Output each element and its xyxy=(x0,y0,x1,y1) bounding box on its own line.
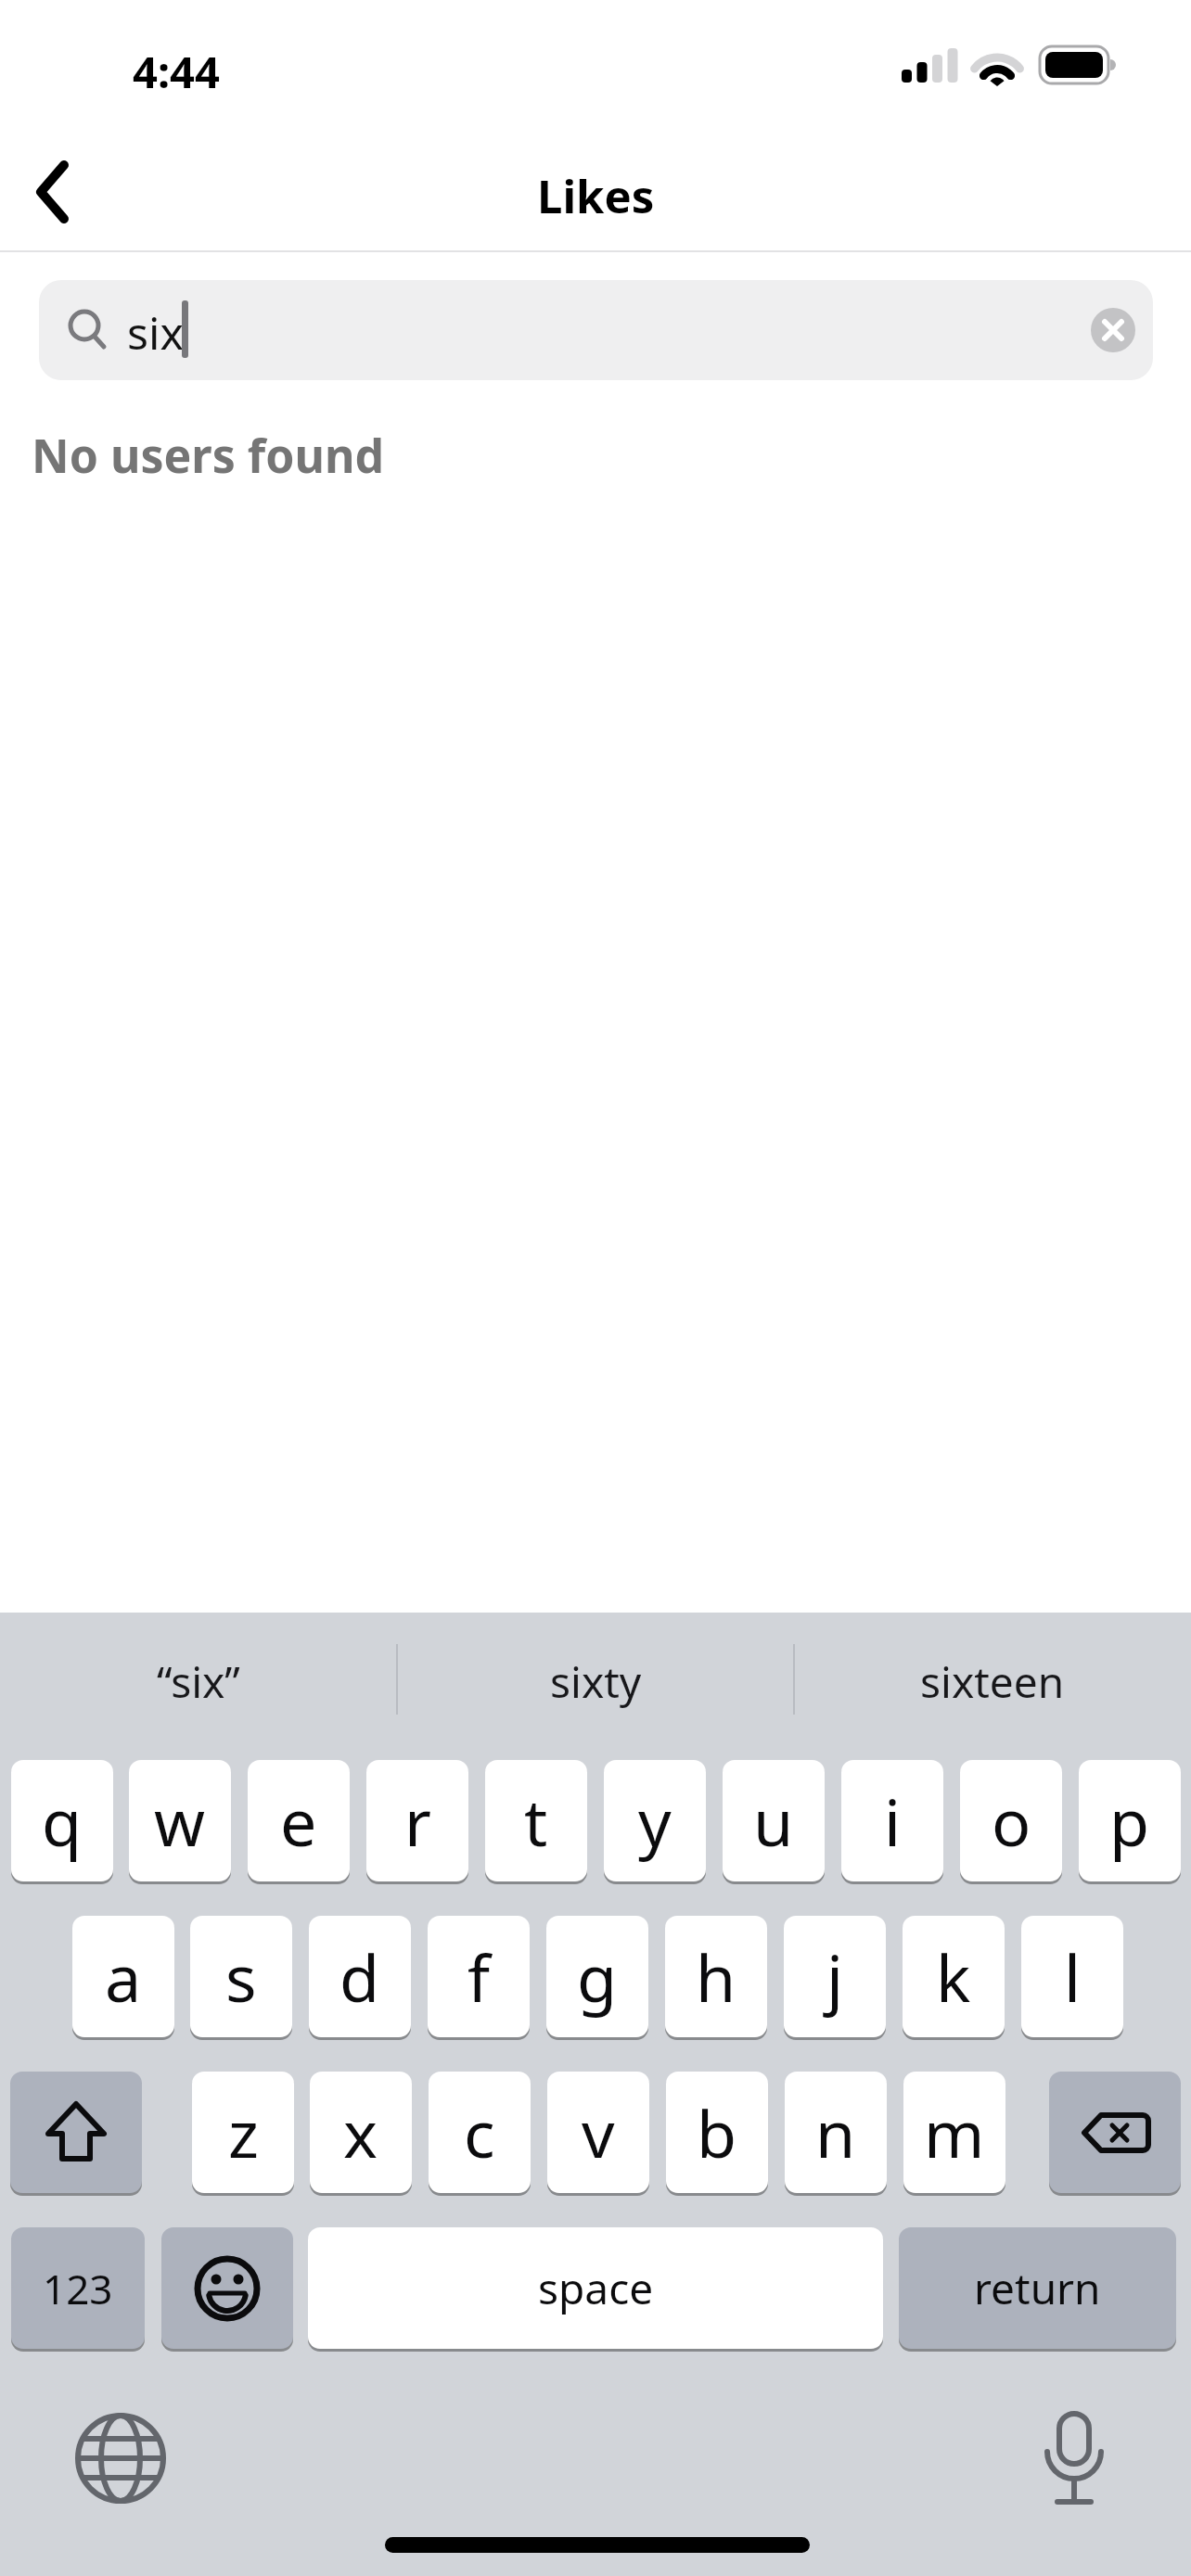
button[interactable]: q xyxy=(11,1760,113,1881)
staticText: b xyxy=(697,2088,737,2176)
button[interactable]: z xyxy=(192,2072,294,2193)
button[interactable] xyxy=(1049,2072,1181,2193)
staticText: x xyxy=(343,2088,378,2176)
staticText: c xyxy=(464,2088,495,2176)
staticText: d xyxy=(339,1932,380,2021)
staticText: r xyxy=(404,1777,431,1865)
button[interactable]: c xyxy=(429,2072,531,2193)
button[interactable]: e xyxy=(248,1760,350,1881)
staticText: w xyxy=(154,1777,206,1865)
button[interactable]: 123 xyxy=(11,2227,145,2349)
button[interactable]: m xyxy=(903,2072,1005,2193)
staticText: No users found xyxy=(32,424,384,487)
staticText: t xyxy=(524,1777,548,1865)
button[interactable]: j xyxy=(784,1916,886,2037)
button[interactable]: f xyxy=(428,1916,530,2037)
button[interactable]: r xyxy=(366,1760,468,1881)
button[interactable]: u xyxy=(723,1760,825,1881)
staticText: q xyxy=(42,1777,83,1865)
staticText: space xyxy=(538,2259,654,2317)
staticText: f xyxy=(467,1932,491,2021)
staticText: s xyxy=(225,1932,257,2021)
staticText: j xyxy=(826,1932,844,2021)
staticText: u xyxy=(753,1777,794,1865)
button[interactable]: b xyxy=(666,2072,768,2193)
staticText: “six” xyxy=(157,1652,240,1710)
staticText: h xyxy=(696,1932,736,2021)
staticText: 123 xyxy=(43,2261,113,2316)
staticText: sixteen xyxy=(920,1652,1065,1710)
staticText: Likes xyxy=(537,165,655,221)
staticText: o xyxy=(992,1777,1031,1865)
staticText: k xyxy=(936,1932,971,2021)
staticText: sixty xyxy=(550,1652,642,1710)
staticText: i xyxy=(884,1777,902,1865)
staticText: a xyxy=(105,1932,142,2021)
staticText: six xyxy=(127,302,184,358)
button[interactable]: o xyxy=(960,1760,1062,1881)
staticText: return xyxy=(974,2259,1101,2317)
staticText: l xyxy=(1064,1932,1082,2021)
staticText: m xyxy=(924,2088,985,2176)
button[interactable]: d xyxy=(309,1916,411,2037)
button[interactable]: n xyxy=(785,2072,887,2193)
button[interactable]: x xyxy=(310,2072,412,2193)
button[interactable] xyxy=(39,280,1153,380)
button[interactable]: v xyxy=(547,2072,649,2193)
button[interactable]: g xyxy=(546,1916,648,2037)
staticText: v xyxy=(582,2088,615,2176)
button[interactable]: p xyxy=(1079,1760,1181,1881)
staticText: n xyxy=(815,2088,856,2176)
button[interactable]: h xyxy=(665,1916,767,2037)
button[interactable]: space xyxy=(308,2227,883,2349)
button[interactable]: return xyxy=(899,2227,1176,2349)
staticText: g xyxy=(577,1932,618,2021)
button[interactable]: y xyxy=(604,1760,706,1881)
button[interactable]: t xyxy=(485,1760,587,1881)
button[interactable] xyxy=(10,2072,142,2193)
staticText: p xyxy=(1109,1777,1150,1865)
button[interactable]: i xyxy=(841,1760,943,1881)
staticText: 4:44 xyxy=(133,42,220,97)
button[interactable]: a xyxy=(72,1916,174,2037)
staticText: z xyxy=(228,2088,259,2176)
button[interactable]: k xyxy=(903,1916,1005,2037)
staticText: e xyxy=(280,1777,317,1865)
button[interactable] xyxy=(161,2227,293,2349)
button[interactable]: l xyxy=(1021,1916,1123,2037)
button[interactable]: w xyxy=(129,1760,231,1881)
button[interactable]: s xyxy=(190,1916,292,2037)
staticText: y xyxy=(638,1777,672,1865)
